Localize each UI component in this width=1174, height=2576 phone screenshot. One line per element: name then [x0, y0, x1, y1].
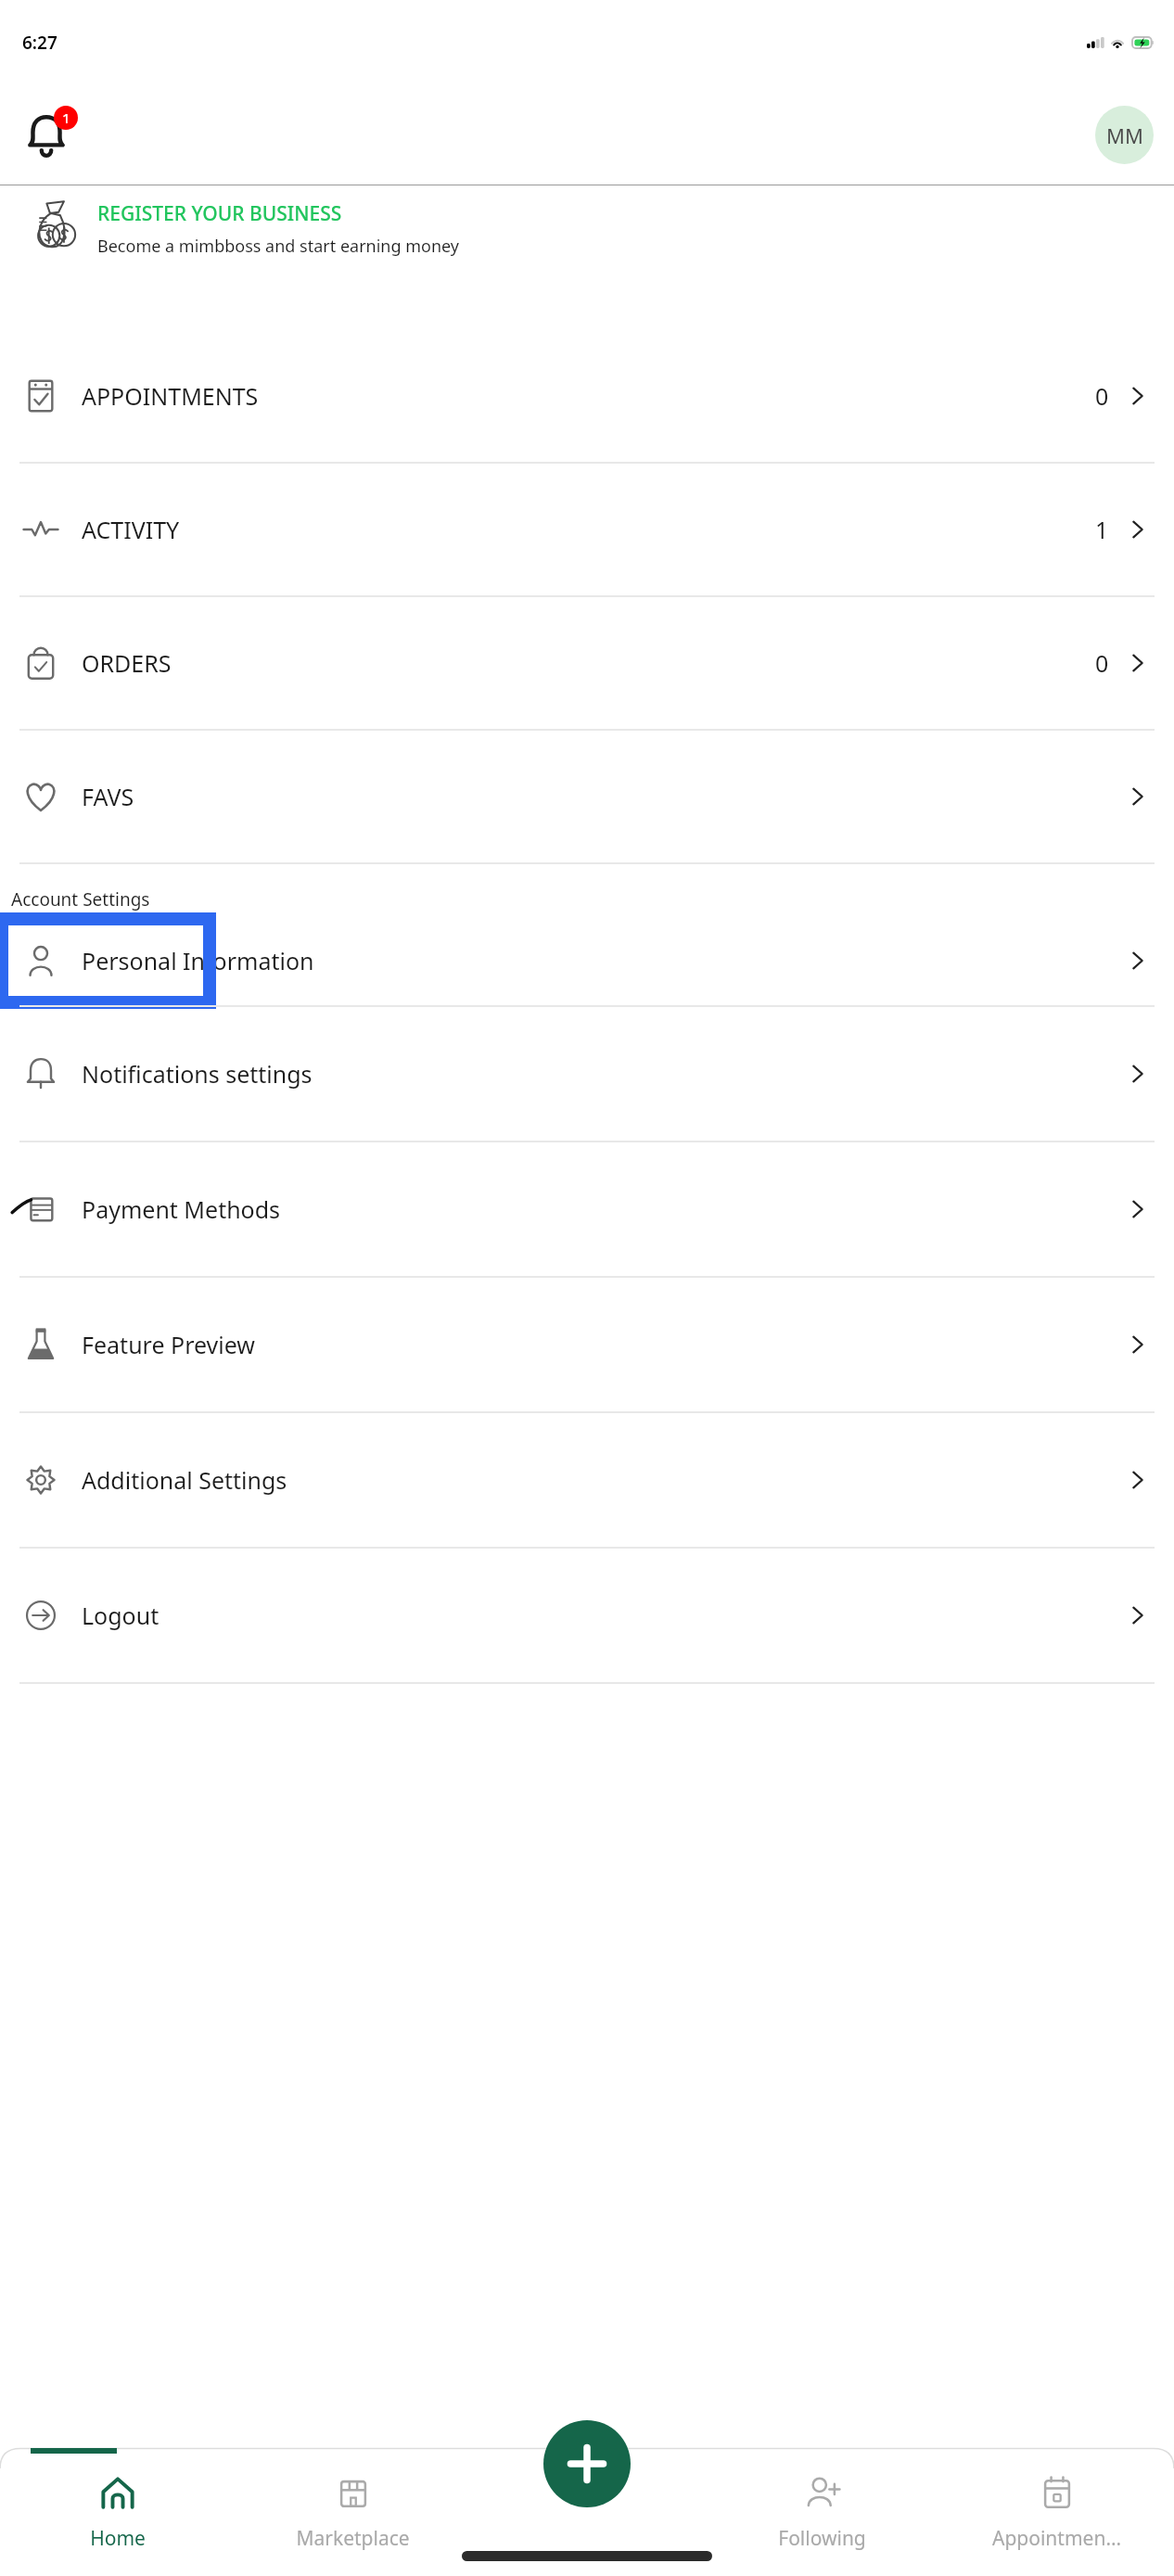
button[interactable]: Notifications settings: [0, 1007, 1174, 1141]
staticText: Feature Preview: [82, 1329, 255, 1360]
button[interactable]: Feature Preview: [0, 1278, 1174, 1411]
staticText: Account Settings: [11, 887, 150, 912]
button[interactable]: ORDERS: [0, 597, 1174, 729]
button[interactable]: Additional Settings: [0, 1413, 1174, 1547]
staticText: Logout: [82, 1600, 160, 1631]
button[interactable]: Profile: [1095, 106, 1154, 164]
staticText: ACTIVITY: [82, 514, 180, 545]
staticText: MM: [1106, 121, 1143, 149]
button[interactable]: Logout: [0, 1549, 1174, 1682]
button[interactable]: Notifications: [13, 102, 80, 169]
staticText: 0: [1095, 380, 1109, 412]
staticText: 6:27: [22, 31, 57, 55]
staticText: Home: [90, 2525, 146, 2552]
staticText: Marketplace: [296, 2525, 410, 2552]
staticText: Payment Methods: [82, 1193, 281, 1225]
button[interactable]: APPOINTMENTS: [0, 330, 1174, 462]
button[interactable]: Personal Information: [0, 916, 1174, 1005]
staticText: 1: [1095, 514, 1109, 545]
button[interactable]: REGISTER YOUR BUSINESS: [19, 185, 1155, 308]
button[interactable]: Appointmen…: [939, 2461, 1174, 2552]
button[interactable]: Marketplace: [236, 2461, 470, 2552]
button[interactable]: Add: [543, 2420, 631, 2507]
button[interactable]: Payment Methods: [0, 1142, 1174, 1276]
button[interactable]: ACTIVITY: [0, 464, 1174, 595]
button[interactable]: FAVS: [0, 731, 1174, 862]
button[interactable]: Home: [0, 2461, 236, 2552]
button[interactable]: Following: [705, 2461, 939, 2552]
staticText: 0: [1095, 647, 1109, 679]
staticText: Personal Information: [82, 945, 314, 976]
staticText: Following: [778, 2525, 866, 2552]
staticText: Notifications settings: [82, 1058, 313, 1090]
staticText: 1: [62, 108, 70, 127]
staticText: REGISTER YOUR BUSINESS: [97, 200, 342, 227]
staticText: Become a mimbboss and start earning mone…: [97, 235, 460, 258]
staticText: Appointmen…: [992, 2525, 1121, 2552]
staticText: FAVS: [82, 781, 134, 812]
staticText: Additional Settings: [82, 1464, 287, 1496]
staticText: APPOINTMENTS: [82, 380, 259, 412]
staticText: ORDERS: [82, 647, 172, 679]
